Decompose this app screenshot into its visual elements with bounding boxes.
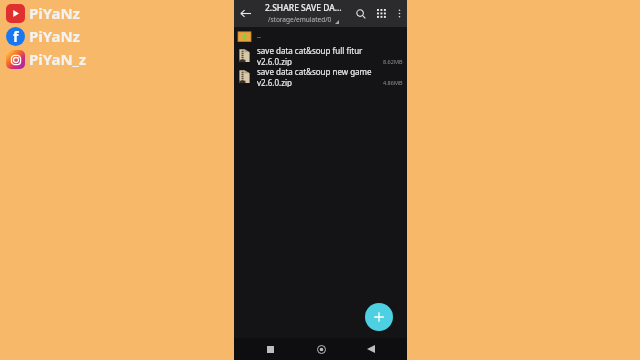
button[interactable]: Facebook [6, 27, 25, 46]
staticText: 4.86MB [383, 79, 403, 86]
button[interactable]: save data cat&soup full fitur [234, 45, 407, 66]
staticText: /storage/emulated/0 [268, 15, 332, 24]
staticText: PiYaNz [29, 3, 81, 23]
staticText: PiYaN_z [29, 49, 87, 69]
button[interactable]: Search [351, 0, 371, 27]
button[interactable]: Grid view [371, 0, 391, 27]
staticText: v2.6.0.zip [257, 56, 292, 66]
button[interactable]: YouTube [6, 4, 25, 23]
button[interactable]: Recents [256, 338, 284, 360]
button[interactable]: Instagram [6, 50, 25, 69]
staticText: v2.6.0.zip [257, 77, 292, 87]
button[interactable]: More options [391, 0, 407, 27]
staticText: PiYaNz [29, 26, 81, 46]
staticText: .. [257, 31, 261, 41]
staticText: f [13, 27, 19, 46]
staticText: save data cat&soup full fitur [257, 45, 363, 56]
button[interactable]: .. [234, 27, 407, 45]
button[interactable]: Home [307, 338, 335, 360]
staticText: save data cat&soup new game [257, 66, 372, 77]
button[interactable]: Back [234, 0, 256, 27]
staticText: 8.62MB [383, 58, 403, 65]
button[interactable]: save data cat&soup new game [234, 66, 407, 87]
button[interactable]: Add [365, 303, 393, 331]
staticText: 2.SHARE SAVE DA… [265, 2, 342, 14]
button[interactable]: Back [357, 338, 385, 360]
